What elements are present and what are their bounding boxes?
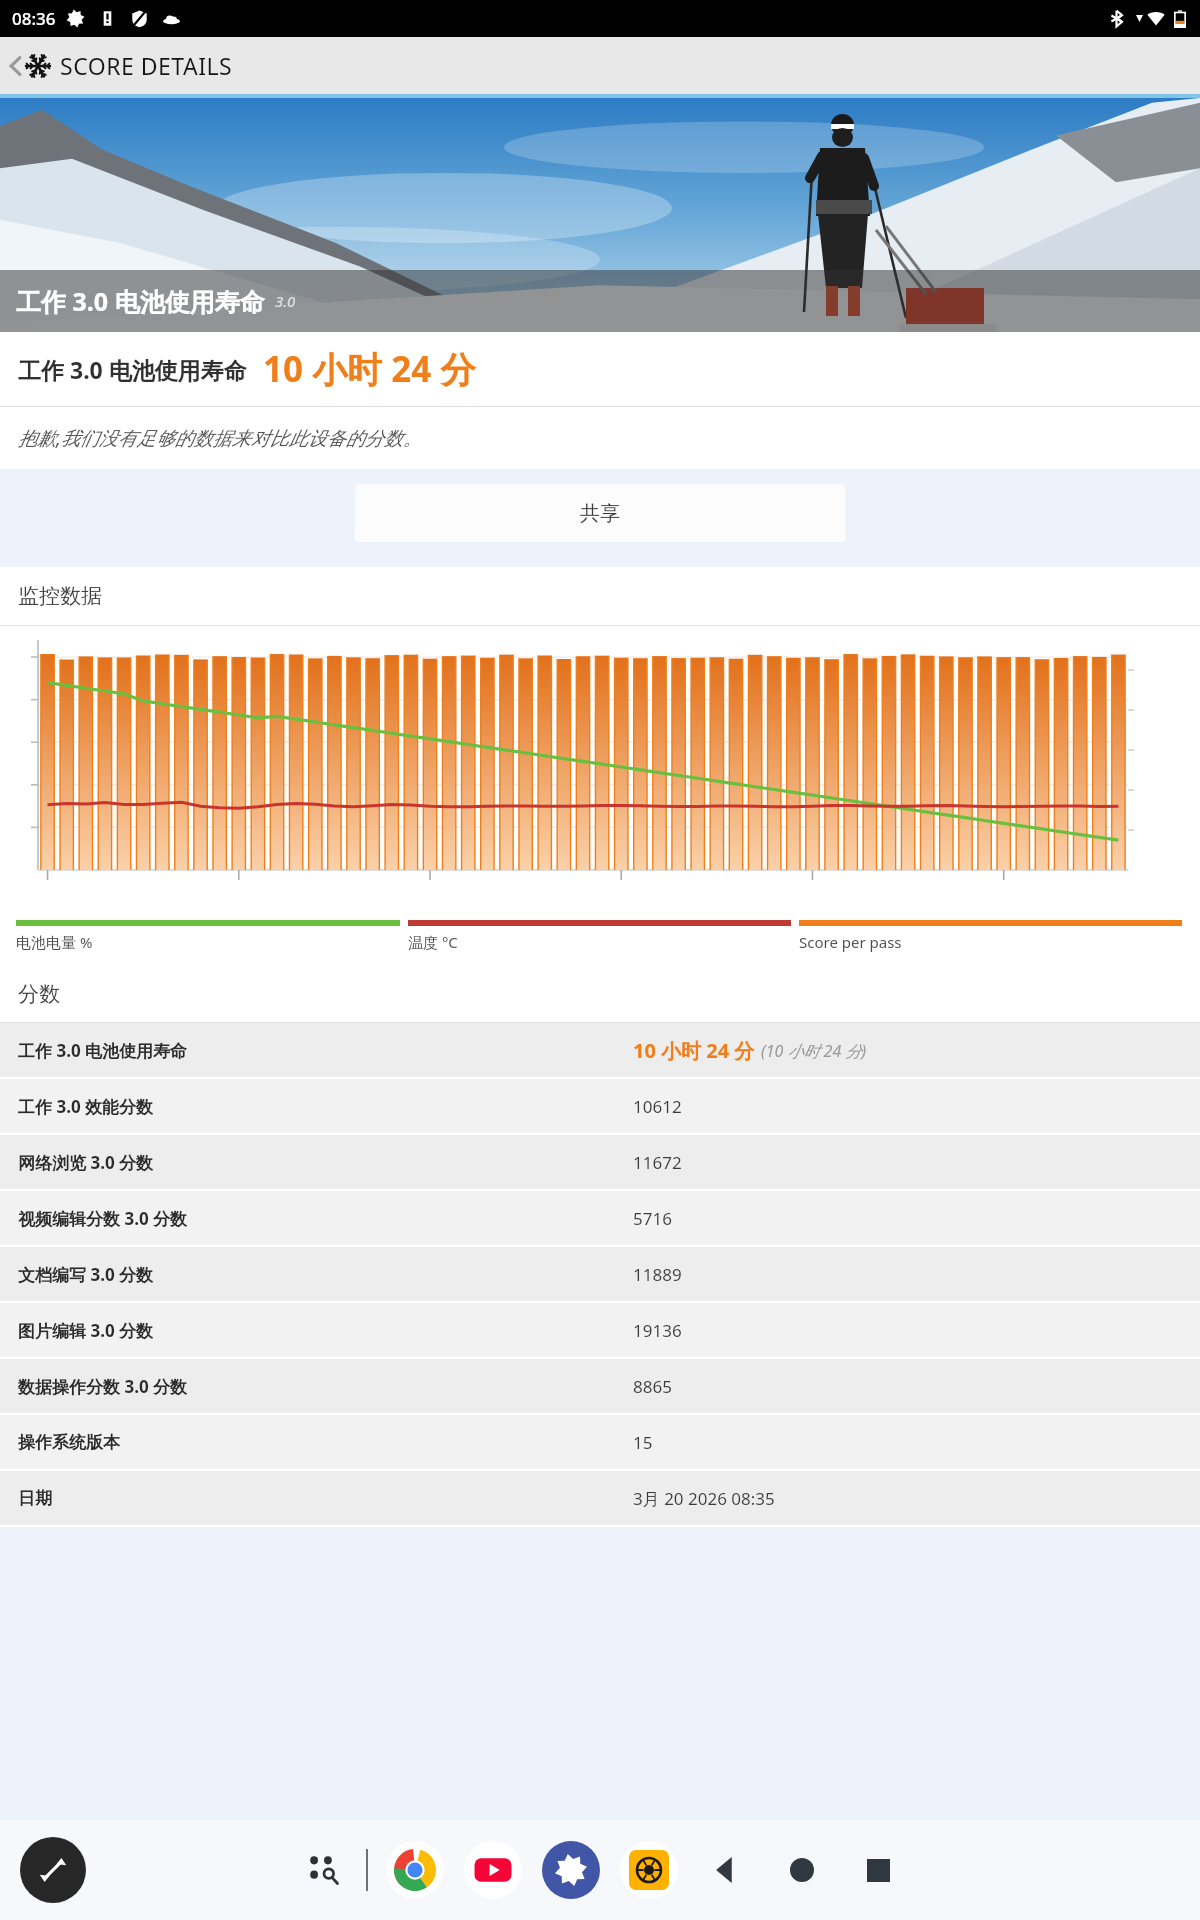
button[interactable]: 视频编辑分数 3.0 分数 — [0, 1191, 1200, 1245]
button[interactable]: 日期 — [0, 1471, 1200, 1525]
staticText: 分数 — [18, 981, 60, 1007]
button[interactable]: Back — [0, 37, 1200, 94]
staticText: 19136 — [633, 1319, 682, 1342]
staticText: 10 小时 24 分 — [263, 345, 476, 393]
staticText: 共享 — [580, 501, 620, 526]
button[interactable]: Rotate — [20, 1837, 86, 1903]
staticText: Score per pass — [799, 932, 902, 952]
button[interactable]: PCMark — [620, 1841, 678, 1899]
staticText: 3月 20 2026 08:35 — [633, 1487, 775, 1510]
staticText: SCORE DETAILS — [60, 50, 233, 81]
staticText: 图片编辑 3.0 分数 — [18, 1319, 154, 1342]
staticText: 工作 3.0 电池使用寿命 — [18, 354, 247, 385]
staticText: 5716 — [633, 1207, 672, 1230]
staticText: 3.0 — [275, 291, 296, 311]
button[interactable]: Home — [776, 1844, 828, 1896]
staticText: 监控数据 — [18, 583, 102, 609]
button[interactable]: 操作系统版本 — [0, 1415, 1200, 1469]
button[interactable]: YouTube — [464, 1841, 522, 1899]
staticText: 工作 3.0 电池使用寿命 — [16, 284, 265, 318]
button[interactable]: Settings — [542, 1841, 600, 1899]
button[interactable]: Back — [700, 1844, 752, 1896]
button[interactable]: 共享 — [355, 484, 845, 542]
staticText: 网络浏览 3.0 分数 — [18, 1151, 154, 1174]
staticText: 视频编辑分数 3.0 分数 — [18, 1207, 188, 1230]
staticText: 11889 — [633, 1263, 682, 1286]
button[interactable]: 文档编写 3.0 分数 — [0, 1247, 1200, 1301]
staticText: 15 — [633, 1431, 653, 1454]
button[interactable]: Recents — [852, 1844, 904, 1896]
staticText: 抱歉,我们没有足够的数据来对比此设备的分数。 — [18, 425, 422, 451]
staticText: 温度 °C — [408, 932, 458, 952]
staticText: (10 小时 24 分) — [761, 1040, 867, 1062]
button[interactable]: Chrome — [386, 1841, 444, 1899]
staticText: 数据操作分数 3.0 分数 — [18, 1375, 188, 1398]
button[interactable]: 图片编辑 3.0 分数 — [0, 1303, 1200, 1357]
staticText: 日期 — [18, 1488, 52, 1509]
staticText: 文档编写 3.0 分数 — [18, 1263, 154, 1286]
button[interactable]: 工作 3.0 效能分数 — [0, 1079, 1200, 1133]
button[interactable]: 网络浏览 3.0 分数 — [0, 1135, 1200, 1189]
other: Back — [8, 53, 22, 79]
staticText: 08:36 — [12, 7, 56, 30]
staticText: 电池电量 % — [16, 932, 93, 952]
button[interactable]: All apps — [296, 1842, 352, 1898]
staticText: 工作 3.0 效能分数 — [18, 1095, 154, 1118]
staticText: 8865 — [633, 1375, 672, 1398]
button[interactable]: 数据操作分数 3.0 分数 — [0, 1359, 1200, 1413]
button[interactable]: 工作 3.0 电池使用寿命 — [0, 1023, 1200, 1077]
staticText: 操作系统版本 — [18, 1432, 120, 1453]
staticText: 工作 3.0 电池使用寿命 — [18, 1039, 188, 1062]
staticText: 11672 — [633, 1151, 682, 1174]
staticText: 10 小时 24 分 — [633, 1037, 755, 1064]
staticText: 10612 — [633, 1095, 682, 1118]
